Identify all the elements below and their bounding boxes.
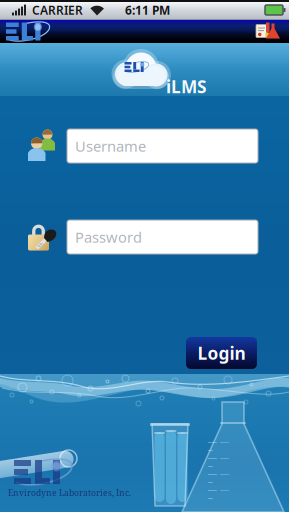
button[interactable]: Login [186,337,257,369]
staticText: Password [75,227,142,247]
button[interactable]: ELI home [0,20,70,43]
button[interactable]: Username [67,129,258,163]
staticText: Username [75,136,146,156]
button[interactable]: Lab tests [249,20,289,43]
staticText: Envirodyne Laboratories, Inc. [8,487,131,499]
staticText: Login [197,341,245,364]
button[interactable]: Password [67,220,258,254]
staticText: 6:11 PM [125,2,170,18]
staticText: iLMS [166,75,207,98]
staticText: CARRIER [32,2,83,18]
